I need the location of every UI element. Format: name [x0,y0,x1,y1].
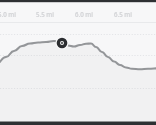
button[interactable]: Elevation profile chart [0,0,156,125]
